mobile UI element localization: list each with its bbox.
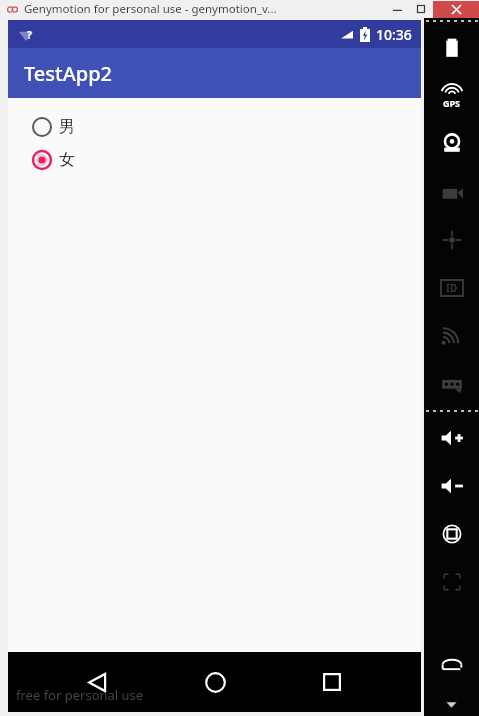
staticText: GPS [443, 97, 461, 109]
staticText: ? [27, 28, 32, 42]
button[interactable]: Rotate [424, 510, 479, 558]
staticText: free for personal use [16, 686, 144, 704]
staticText: 男 [59, 117, 75, 137]
button[interactable]: Maximize [409, 0, 433, 18]
button[interactable]: 女 [31, 149, 87, 171]
button[interactable]: Home [187, 654, 243, 710]
button[interactable]: Back [69, 654, 125, 710]
button[interactable]: Battery [424, 24, 479, 72]
button[interactable]: More [424, 692, 479, 716]
button[interactable]: GPS [424, 72, 479, 120]
button[interactable]: Identifiers [424, 264, 479, 312]
button[interactable]: Move [424, 216, 479, 264]
staticText: TestApp2 [24, 60, 113, 87]
button[interactable]: Screenshot [424, 558, 479, 606]
button[interactable]: Volume up [424, 414, 479, 462]
button[interactable]: 男 [31, 116, 87, 138]
button[interactable]: Volume down [424, 462, 479, 510]
button[interactable]: Recents [304, 654, 360, 710]
button[interactable]: Minimize [385, 0, 409, 18]
button[interactable]: Camera [424, 120, 479, 168]
staticText: ID [446, 281, 458, 295]
button[interactable]: Network [424, 312, 479, 360]
button[interactable]: Undo [424, 638, 479, 692]
staticText: 女 [59, 150, 75, 170]
button[interactable]: Video [424, 168, 479, 216]
staticText: 10:36 [376, 25, 412, 44]
staticText: Genymotion for personal use - genymotion… [24, 1, 277, 17]
button[interactable]: SMS [424, 360, 479, 408]
button[interactable]: Close [433, 1, 479, 18]
